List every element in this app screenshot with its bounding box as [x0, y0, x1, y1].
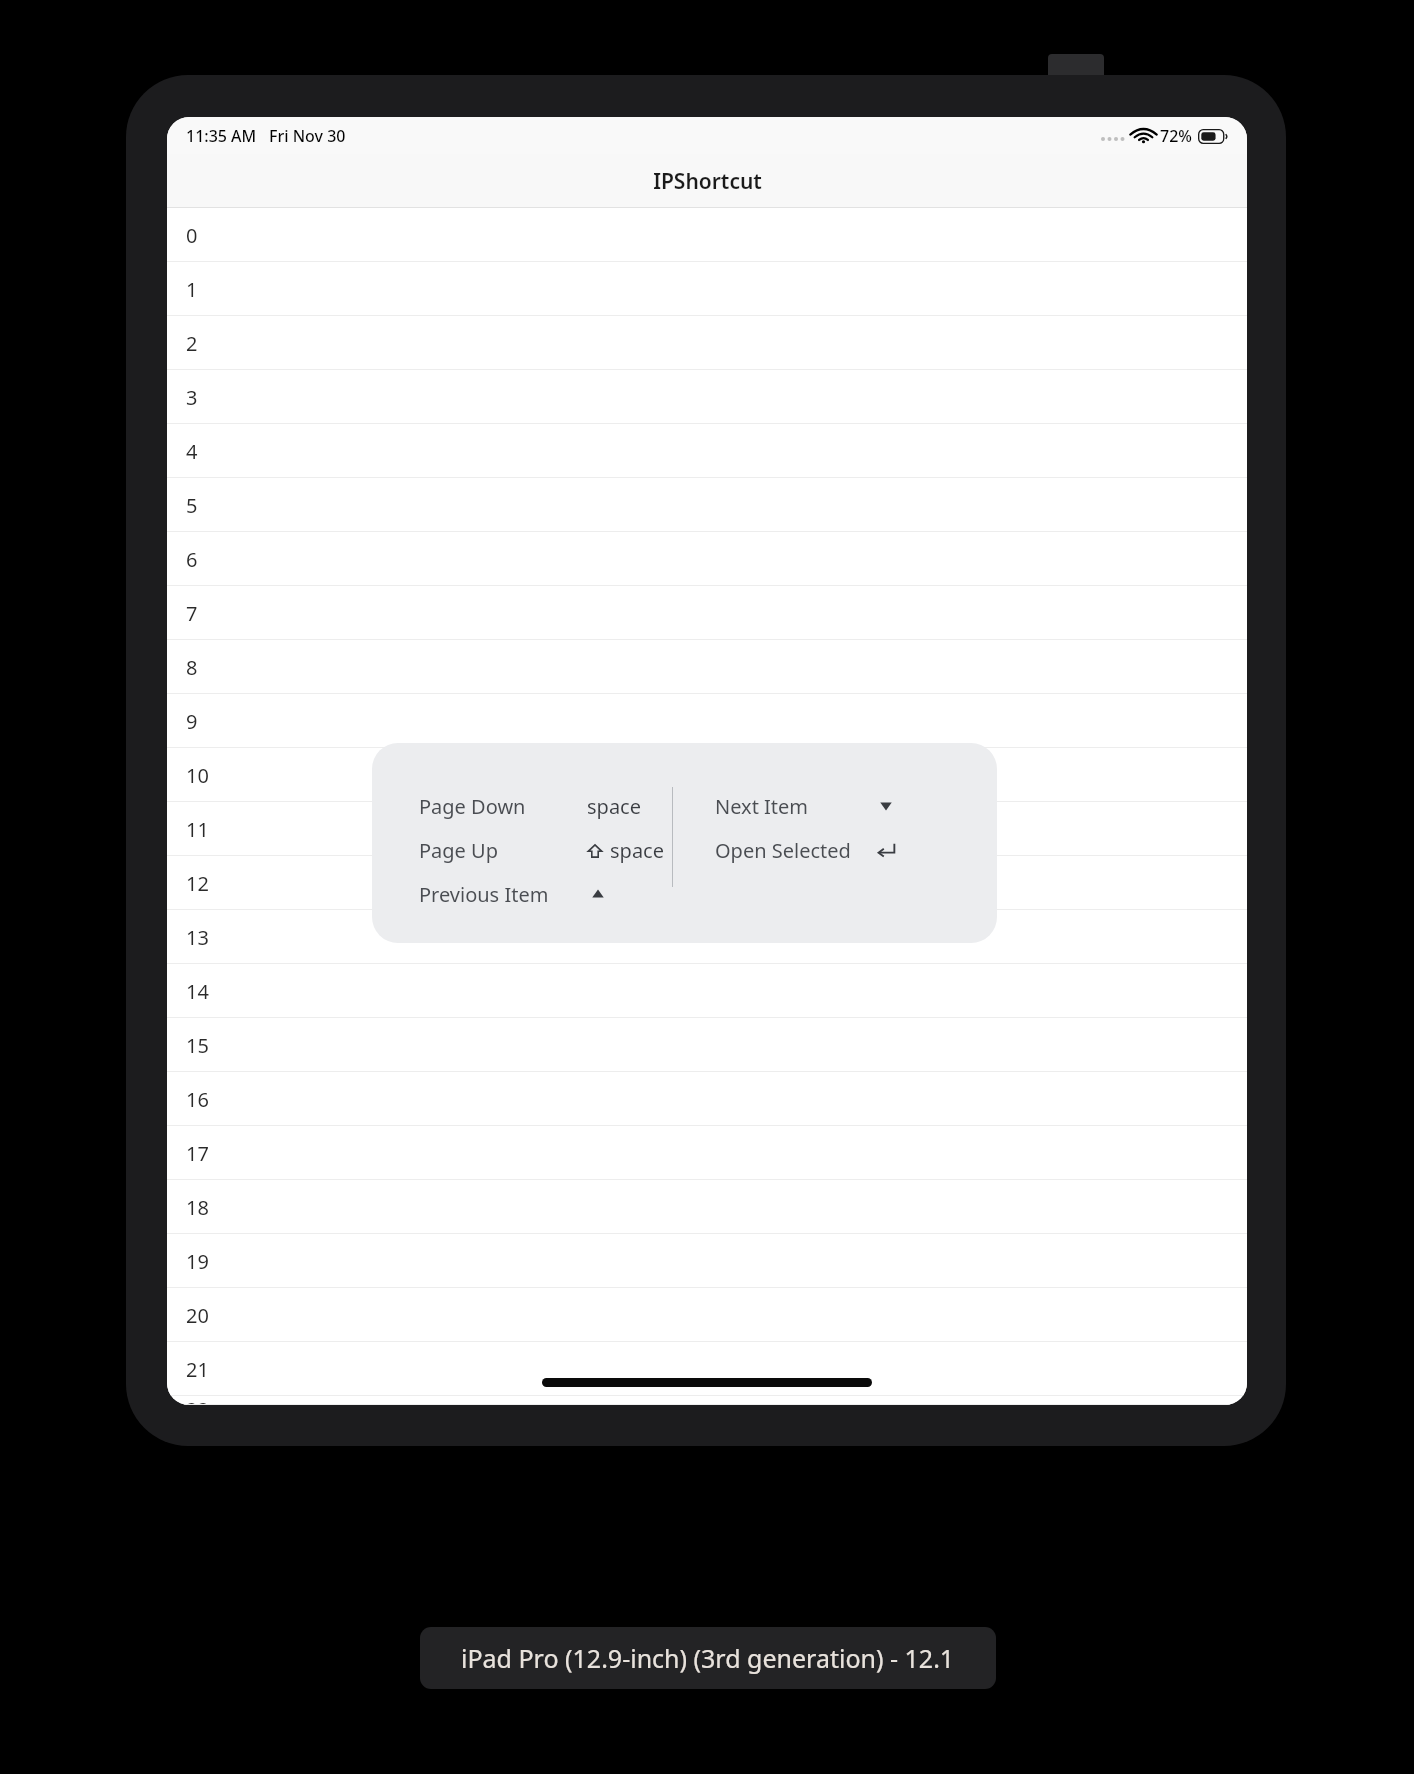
button[interactable]: 21 — [167, 1342, 1247, 1396]
button[interactable]: iPad Pro (12.9-inch) (3rd generation) - … — [420, 1627, 996, 1689]
button[interactable]: 5 — [167, 478, 1247, 532]
button[interactable]: 19 — [167, 1234, 1247, 1288]
staticText: 17 — [186, 1140, 209, 1167]
staticText: 11 — [186, 816, 209, 843]
staticText: space — [587, 793, 641, 820]
staticText: 3 — [186, 384, 198, 411]
button[interactable]: 7 — [167, 586, 1247, 640]
staticText: iPad Pro (12.9-inch) (3rd generation) - … — [461, 1641, 955, 1675]
button[interactable]: 22 — [167, 1396, 1247, 1405]
button[interactable]: Next Item — [715, 789, 973, 823]
staticText: 1 — [186, 276, 198, 303]
button[interactable]: 8 — [167, 640, 1247, 694]
staticText: 22 — [186, 1396, 209, 1405]
staticText: 0 — [186, 222, 198, 249]
staticText: 15 — [186, 1032, 209, 1059]
staticText: 72% — [1160, 125, 1192, 147]
button[interactable]: 3 — [167, 370, 1247, 424]
button[interactable]: Page Down — [419, 789, 672, 823]
button[interactable]: 11 — [167, 802, 1247, 856]
button[interactable]: 12 — [167, 856, 1247, 910]
button[interactable]: 0 — [167, 208, 1247, 262]
staticText: 9 — [186, 708, 198, 735]
button[interactable]: 2 — [167, 316, 1247, 370]
button[interactable]: Previous Item — [419, 877, 672, 911]
staticText: Page Up — [419, 837, 499, 864]
other: Return key — [875, 839, 897, 861]
button[interactable]: 4 — [167, 424, 1247, 478]
button[interactable]: 14 — [167, 964, 1247, 1018]
staticText: 5 — [186, 492, 198, 519]
staticText: Next Item — [715, 793, 809, 820]
staticText: 20 — [186, 1302, 209, 1329]
staticText: Page Down — [419, 793, 526, 820]
staticText: 12 — [186, 870, 209, 897]
staticText: Fri Nov 30 — [269, 125, 346, 147]
staticText: 16 — [186, 1086, 209, 1113]
button[interactable]: 1 — [167, 262, 1247, 316]
button[interactable]: Page Up — [419, 833, 672, 867]
staticText: 21 — [186, 1356, 209, 1383]
button[interactable]: 18 — [167, 1180, 1247, 1234]
staticText: space — [610, 837, 664, 864]
staticText: 14 — [186, 978, 209, 1005]
button[interactable]: 20 — [167, 1288, 1247, 1342]
other: Down arrow key — [875, 795, 897, 817]
staticText: 13 — [186, 924, 209, 951]
staticText: 11:35 AM — [186, 125, 257, 147]
button[interactable]: 9 — [167, 694, 1247, 748]
staticText: 19 — [186, 1248, 209, 1275]
staticText: 7 — [186, 600, 198, 627]
button[interactable]: 13 — [167, 910, 1247, 964]
other: Up arrow key — [587, 883, 609, 905]
staticText: 2 — [186, 330, 198, 357]
staticText: IPShortcut — [653, 167, 762, 196]
button[interactable]: 10 — [167, 748, 1247, 802]
button[interactable]: Open Selected — [715, 833, 973, 867]
button[interactable]: 16 — [167, 1072, 1247, 1126]
staticText: 4 — [186, 438, 198, 465]
staticText: Open Selected — [715, 837, 851, 864]
staticText: Previous Item — [419, 881, 549, 908]
staticText: 18 — [186, 1194, 209, 1221]
button[interactable]: 6 — [167, 532, 1247, 586]
staticText: 10 — [186, 762, 209, 789]
staticText: 8 — [186, 654, 198, 681]
button[interactable]: 15 — [167, 1018, 1247, 1072]
button[interactable]: 17 — [167, 1126, 1247, 1180]
staticText: 6 — [186, 546, 198, 573]
